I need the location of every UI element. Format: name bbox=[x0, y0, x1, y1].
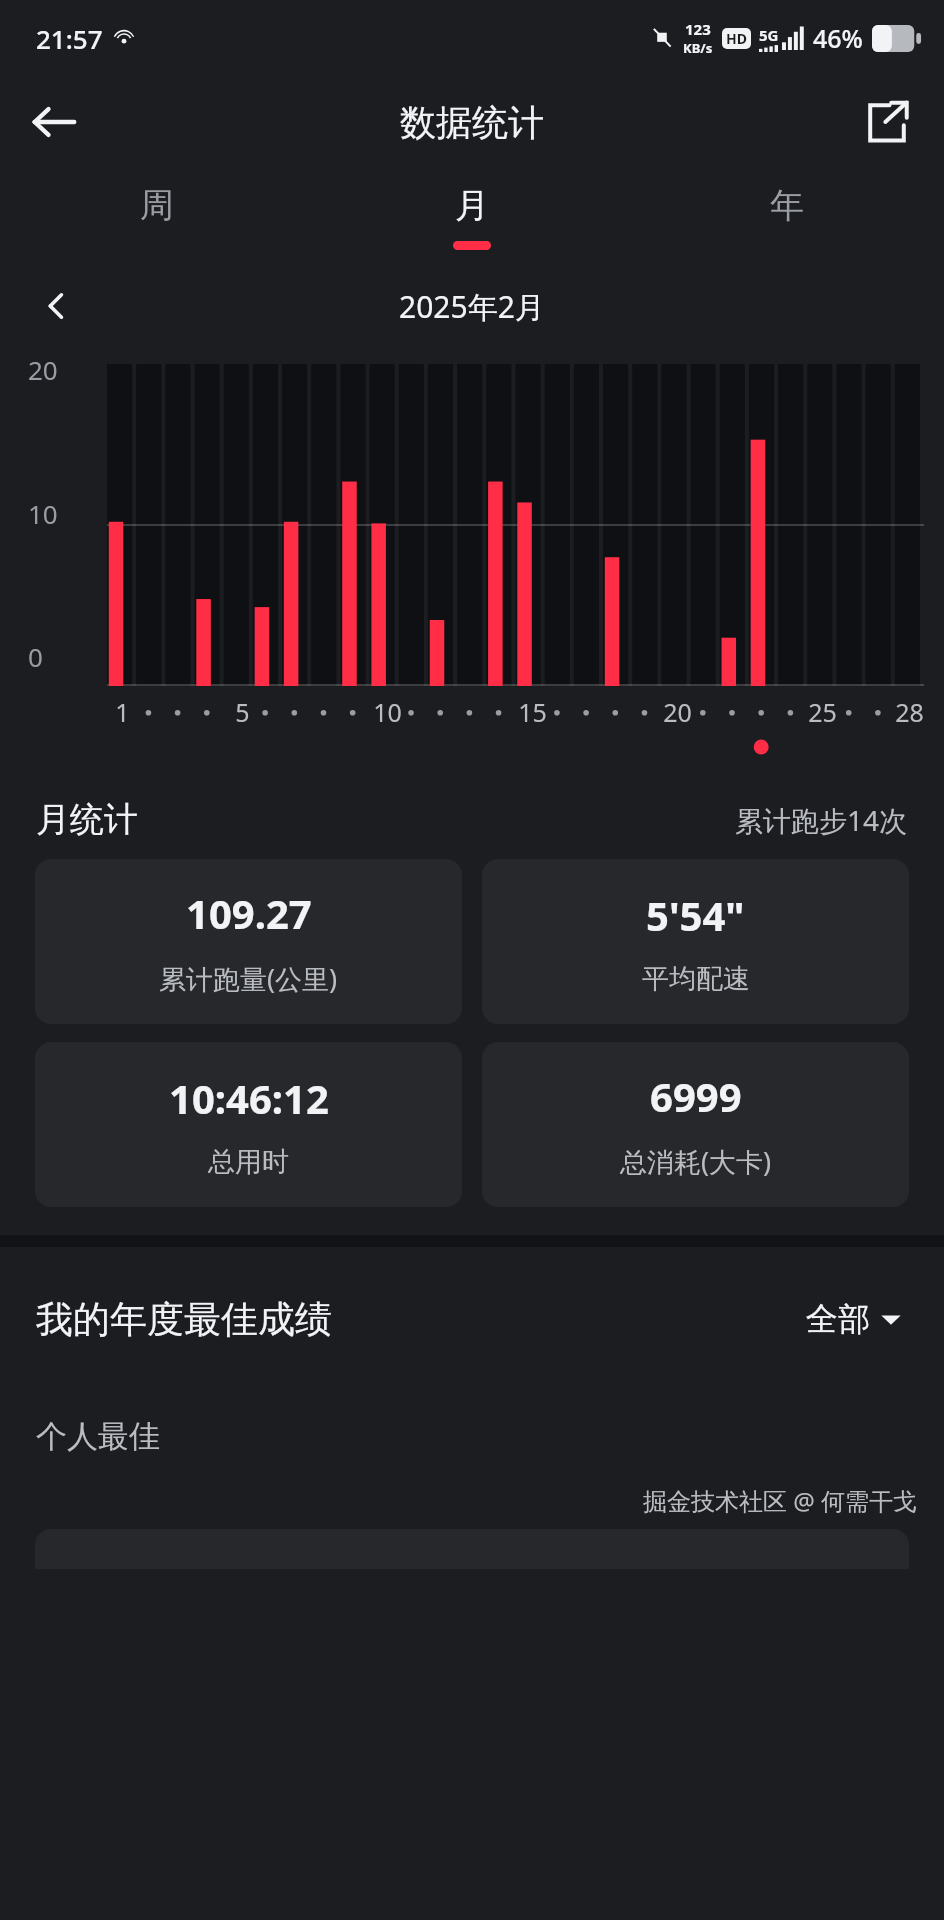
staticText: 累计跑量(公里) bbox=[159, 960, 338, 997]
staticText: 109.27 bbox=[186, 886, 312, 940]
staticText: 46% bbox=[813, 21, 863, 55]
staticText: HD bbox=[726, 29, 747, 48]
staticText: 1 bbox=[115, 695, 130, 729]
staticText: 5G bbox=[759, 25, 779, 45]
staticText: 28 bbox=[895, 695, 924, 729]
staticText: 年 bbox=[770, 184, 804, 227]
button[interactable]: 全部 bbox=[800, 1293, 908, 1345]
staticText: 10 bbox=[28, 496, 58, 531]
button[interactable]: Previous month bbox=[26, 275, 88, 337]
staticText: 25 bbox=[808, 695, 837, 729]
staticText: 我的年度最佳成绩 bbox=[36, 1296, 332, 1343]
staticText: 全部 bbox=[806, 1299, 870, 1339]
button[interactable]: 年 bbox=[629, 168, 944, 266]
staticText: 20 bbox=[28, 352, 58, 387]
staticText: KB/s bbox=[683, 39, 713, 57]
staticText: 总消耗(大卡) bbox=[620, 1143, 772, 1180]
staticText: 5 bbox=[235, 695, 250, 729]
staticText: 月统计 bbox=[36, 798, 138, 841]
staticText: 掘金技术社区 @ 何需干戈 bbox=[643, 1484, 918, 1517]
button[interactable]: Back bbox=[16, 84, 92, 160]
staticText: 6999 bbox=[650, 1069, 742, 1123]
staticText: 10:46:12 bbox=[169, 1071, 329, 1125]
staticText: 周 bbox=[140, 184, 174, 227]
staticText: 5'54" bbox=[646, 888, 745, 942]
staticText: 123 bbox=[685, 19, 711, 39]
staticText: 总用时 bbox=[208, 1145, 289, 1179]
button[interactable]: 月 bbox=[314, 168, 629, 266]
staticText: 10 bbox=[373, 695, 402, 729]
staticText: 15 bbox=[518, 695, 547, 729]
button[interactable]: 周 bbox=[0, 168, 314, 266]
button[interactable]: 10:46:12 bbox=[35, 1042, 462, 1207]
staticText: 累计跑步14次 bbox=[735, 801, 908, 839]
staticText: 数据统计 bbox=[400, 100, 544, 145]
staticText: 月 bbox=[455, 184, 489, 227]
button[interactable]: 5'54" bbox=[482, 859, 909, 1024]
staticText: 个人最佳 bbox=[36, 1417, 160, 1456]
staticText: 21:57 bbox=[36, 21, 103, 56]
staticText: 20 bbox=[663, 695, 692, 729]
button[interactable]: Share bbox=[852, 87, 922, 157]
staticText: 0 bbox=[28, 639, 43, 674]
staticText: 平均配速 bbox=[642, 962, 750, 996]
button[interactable]: 6999 bbox=[482, 1042, 909, 1207]
button[interactable]: 109.27 bbox=[35, 859, 462, 1024]
staticText: 2025年2月 bbox=[399, 286, 545, 327]
